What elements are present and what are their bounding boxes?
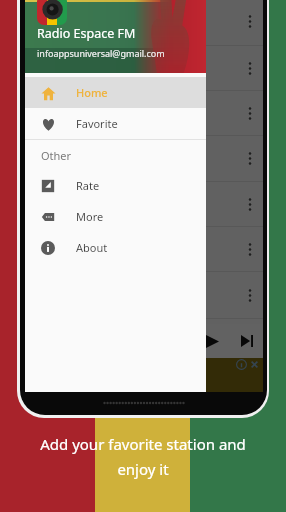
button[interactable]: More options: [25, 46, 263, 90]
staticText: Favorite: [76, 116, 118, 131]
staticText: More: [76, 209, 104, 224]
button[interactable]: More options: [237, 227, 263, 271]
button[interactable]: More options: [237, 136, 263, 181]
button[interactable]: More options: [237, 272, 263, 318]
staticText: About: [76, 240, 108, 255]
button[interactable]: Next: [231, 324, 263, 358]
button[interactable]: More options: [25, 272, 263, 318]
staticText: infoappsuniversal@gmail.com: [37, 47, 165, 59]
button[interactable]: More: [25, 201, 206, 232]
button[interactable]: Rate: [25, 170, 206, 201]
button[interactable]: Favorite: [25, 108, 206, 139]
staticText: Other: [41, 148, 72, 163]
button[interactable]: More options: [237, 182, 263, 226]
button[interactable]: More options: [25, 227, 263, 271]
button[interactable]: About: [25, 232, 206, 263]
staticText: Home: [76, 85, 108, 100]
button[interactable]: More options: [25, 0, 263, 45]
button[interactable]: More options: [25, 182, 263, 226]
button[interactable]: App icon: [37, 0, 67, 25]
button[interactable]: More options: [237, 46, 263, 90]
button[interactable]: Play: [191, 324, 231, 358]
button[interactable]: More options: [237, 0, 263, 45]
button[interactable]: Close ad: [249, 359, 260, 370]
button[interactable]: Home: [25, 77, 206, 108]
button[interactable]: More options: [237, 91, 263, 135]
staticText: Add your favorite station and enjoy it: [40, 434, 246, 479]
button[interactable]: More options: [25, 136, 263, 181]
staticText: Radio Espace FM: [37, 25, 136, 42]
button[interactable]: Ad info: [236, 359, 247, 370]
button[interactable]: More options: [25, 91, 263, 135]
staticText: Rate: [76, 178, 100, 193]
